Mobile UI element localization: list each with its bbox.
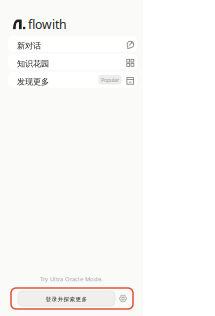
button[interactable]: Settings [115, 291, 131, 306]
staticText: 新对话 [17, 41, 41, 51]
staticText: 发现更多 [17, 77, 49, 87]
staticText: 登录并探索更多 [45, 296, 87, 303]
button[interactable]: 新对话 [8, 36, 137, 52]
button[interactable]: 登录并探索更多 [18, 291, 115, 306]
staticText: 知识花园 [17, 59, 49, 69]
button[interactable]: 发现更多 [8, 72, 137, 88]
staticText: flowith [28, 16, 67, 33]
button[interactable]: 知识花园 [8, 54, 137, 70]
staticText: Try Ultra Oracle Mode. [40, 275, 103, 283]
staticText: Popular [101, 76, 119, 83]
